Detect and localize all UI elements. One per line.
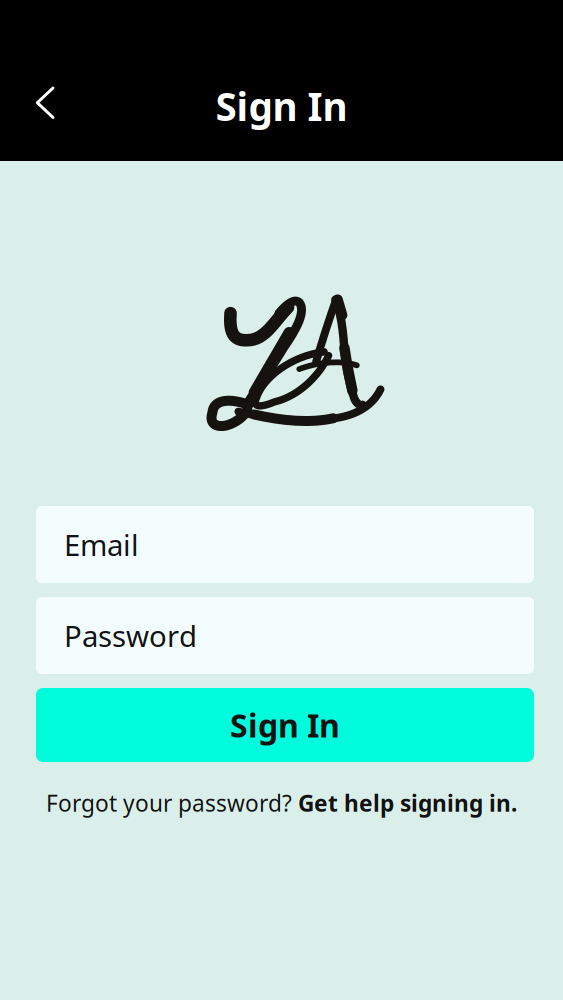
button[interactable]: Back xyxy=(16,74,74,132)
staticText: Forgot your password? xyxy=(46,788,298,818)
staticText: Email xyxy=(64,525,139,564)
staticText: Sign In xyxy=(215,80,347,132)
staticText: Password xyxy=(64,616,197,655)
staticText: Sign In xyxy=(230,704,340,746)
button[interactable]: Email xyxy=(36,506,534,583)
button[interactable]: Password xyxy=(36,597,534,674)
button[interactable]: Forgot your password? xyxy=(0,786,563,820)
staticText: Get help signing in. xyxy=(298,788,517,818)
button[interactable]: Sign In xyxy=(36,688,534,762)
